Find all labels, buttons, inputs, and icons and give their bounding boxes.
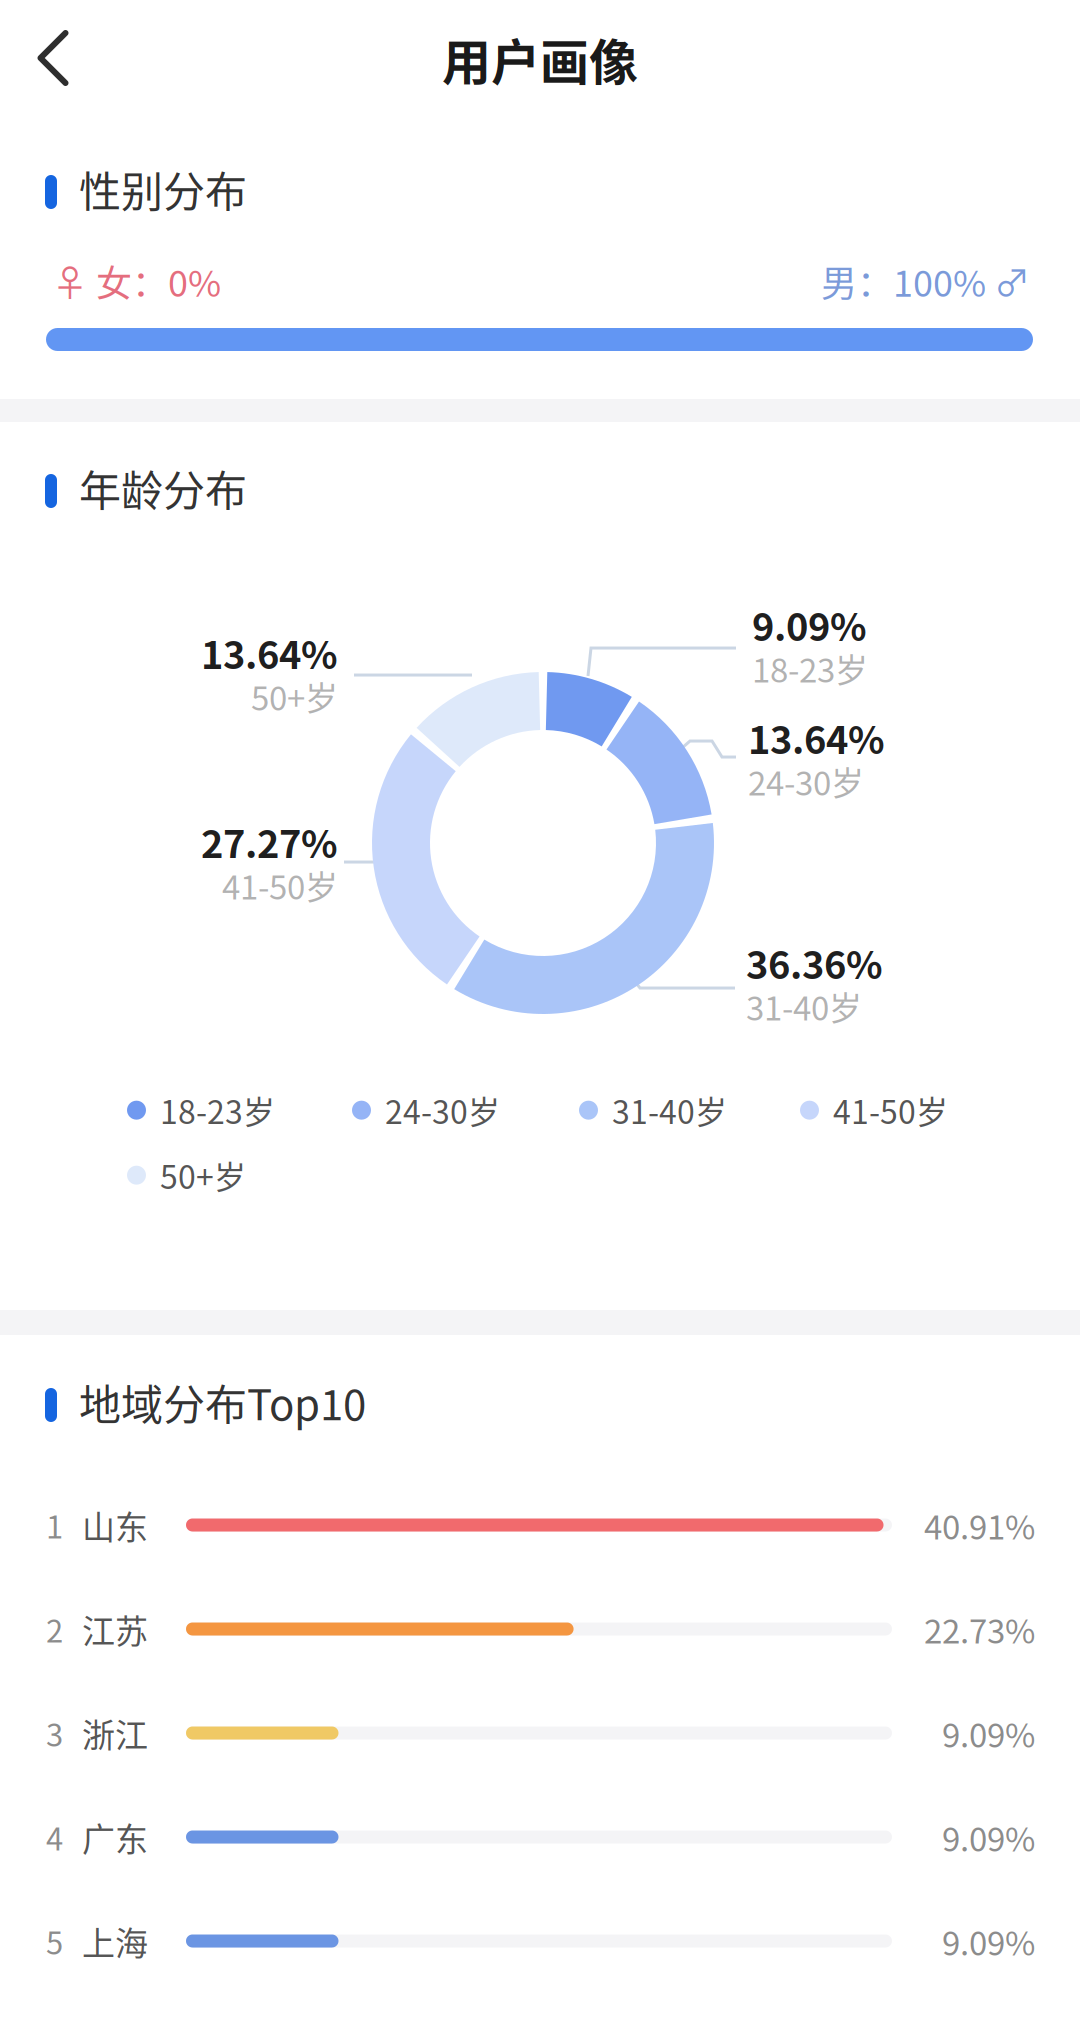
staticText: 浙江 xyxy=(82,1709,148,1757)
staticText: 广东 xyxy=(82,1813,148,1861)
staticText: 18-23岁 xyxy=(160,1087,275,1133)
staticText: 1 xyxy=(46,1503,63,1547)
staticText: 50+岁 xyxy=(160,1152,246,1198)
staticText: 31-40岁 xyxy=(746,982,862,1030)
staticText: 9.09% xyxy=(942,1813,1035,1861)
staticText: 性别分布 xyxy=(79,159,247,219)
staticText: 2 xyxy=(46,1607,63,1651)
staticText: 41-50岁 xyxy=(833,1087,948,1133)
staticText: 男：100% ♂ xyxy=(821,255,1030,307)
staticText: 24-30岁 xyxy=(748,757,864,805)
staticText: 31-40岁 xyxy=(612,1087,727,1133)
button[interactable]: Back xyxy=(5,10,101,106)
staticText: 40.91% xyxy=(924,1501,1035,1549)
staticText: 36.36% xyxy=(746,935,883,990)
staticText: 上海 xyxy=(82,1917,148,1965)
staticText: 用户画像 xyxy=(442,23,638,94)
staticText: 24-30岁 xyxy=(385,1087,500,1133)
staticText: 18-23岁 xyxy=(752,644,868,692)
staticText: 9.09% xyxy=(752,597,867,652)
staticText: 5 xyxy=(46,1919,63,1963)
staticText: 9.09% xyxy=(942,1709,1035,1757)
staticText: 3 xyxy=(46,1711,63,1755)
staticText: 山东 xyxy=(82,1501,148,1549)
staticText: 13.64% xyxy=(748,710,885,765)
staticText: 41-50岁 xyxy=(222,861,338,909)
staticText: 江苏 xyxy=(82,1605,148,1653)
staticText: 50+岁 xyxy=(251,672,338,720)
staticText: 4 xyxy=(46,1815,63,1859)
staticText: 22.73% xyxy=(924,1605,1035,1653)
staticText: 27.27% xyxy=(201,814,338,869)
staticText: ♀ 女：0% xyxy=(52,255,221,307)
staticText: 年龄分布 xyxy=(79,458,247,518)
staticText: 地域分布Top10 xyxy=(79,1372,366,1432)
staticText: 13.64% xyxy=(201,625,338,680)
staticText: 9.09% xyxy=(942,1917,1035,1965)
